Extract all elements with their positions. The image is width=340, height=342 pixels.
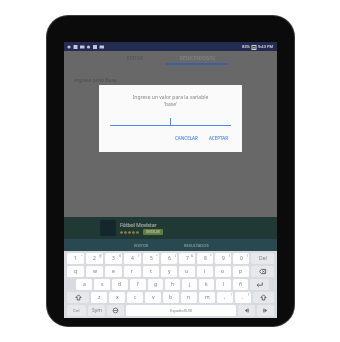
- staticText: Ctrl: [73, 308, 80, 313]
- button[interactable]: .: [235, 292, 251, 303]
- staticText: ingrese paso Base: [74, 77, 117, 84]
- button[interactable]: j: [182, 279, 197, 290]
- button[interactable]: EDITOR: [116, 239, 166, 251]
- button[interactable]: x: [109, 292, 125, 303]
- staticText: 3: [112, 255, 115, 262]
- staticText: CANCELAR: [175, 135, 198, 141]
- button[interactable]: w: [86, 266, 103, 277]
- button[interactable]: Backspace: [251, 266, 274, 277]
- staticText: d: [118, 281, 122, 288]
- button[interactable]: e: [105, 266, 122, 277]
- button[interactable]: v: [145, 292, 161, 303]
- button[interactable]: k: [199, 279, 214, 290]
- staticText: Fútbol Movistar: [120, 222, 157, 229]
- button[interactable]: Ctrl: [67, 305, 86, 316]
- button[interactable]: Move cursor right: [257, 305, 274, 316]
- button[interactable]: RESULTADOS: [166, 239, 226, 251]
- staticText: a: [83, 281, 86, 288]
- staticText: ^: [156, 254, 158, 258]
- staticText: .: [242, 294, 244, 301]
- button[interactable]: n: [181, 292, 197, 303]
- button[interactable]: RESULTADO(S/S): [161, 51, 233, 65]
- button[interactable]: u: [179, 266, 195, 277]
- button[interactable]: z: [91, 292, 107, 303]
- button[interactable]: l: [216, 279, 231, 290]
- button[interactable]: 1: [67, 253, 84, 264]
- button[interactable]: c: [127, 292, 143, 303]
- button[interactable]: 5: [143, 253, 159, 264]
- button[interactable]: Shift: [67, 292, 89, 303]
- button[interactable]: ACEPTAR: [206, 133, 231, 143]
- button[interactable]: Español(US): [126, 305, 236, 316]
- button[interactable]: b: [163, 292, 179, 303]
- staticText: EDITOR: [134, 243, 149, 248]
- staticText: q: [74, 268, 78, 275]
- staticText: t: [150, 268, 152, 275]
- button[interactable]: Shift: [253, 292, 274, 303]
- staticText: @: [99, 254, 102, 258]
- staticText: i: [204, 268, 206, 275]
- button[interactable]: 8: [197, 253, 213, 264]
- staticText: w: [93, 268, 97, 275]
- button[interactable]: Move cursor left: [238, 305, 255, 316]
- button[interactable]: 7: [179, 253, 195, 264]
- staticText: Español(US): [170, 308, 193, 313]
- staticText: 0: [240, 255, 243, 262]
- button[interactable]: Del: [251, 253, 274, 264]
- button[interactable]: t: [143, 266, 159, 277]
- staticText: g: [154, 281, 158, 288]
- button[interactable]: ñ: [233, 279, 248, 290]
- staticText: 2: [93, 255, 96, 262]
- staticText: 4: [131, 255, 134, 262]
- button[interactable]: 0: [233, 253, 249, 264]
- button[interactable]: s: [94, 279, 110, 290]
- staticText: 7: [186, 255, 189, 262]
- staticText: &: [191, 254, 194, 258]
- button[interactable]: ,: [217, 292, 233, 303]
- button[interactable]: i: [197, 266, 213, 277]
- button[interactable]: h: [165, 279, 180, 290]
- staticText: 9: [222, 255, 225, 262]
- button[interactable]: 3: [105, 253, 122, 264]
- staticText: ñ: [239, 281, 243, 288]
- staticText: #: [119, 254, 121, 258]
- staticText: z: [98, 294, 101, 301]
- staticText: v: [152, 294, 155, 301]
- button[interactable]: Fútbol Movistar: [64, 217, 277, 239]
- staticText: !: [231, 293, 232, 297]
- button[interactable]: f: [130, 279, 146, 290]
- staticText: j: [189, 281, 191, 288]
- button[interactable]: a: [76, 279, 92, 290]
- button[interactable]: Sym: [88, 305, 105, 316]
- button[interactable]: q: [67, 266, 84, 277]
- button[interactable]: o: [215, 266, 231, 277]
- staticText: 5: [150, 255, 153, 262]
- staticText: e: [112, 268, 115, 275]
- button[interactable]: y: [161, 266, 177, 277]
- button[interactable]: g: [148, 279, 163, 290]
- staticText: l: [223, 281, 225, 288]
- button[interactable]: m: [199, 292, 215, 303]
- staticText: EDITOR: [127, 55, 144, 61]
- staticText: Del: [259, 255, 267, 262]
- staticText: ?: [248, 293, 250, 297]
- staticText: *: [210, 254, 212, 258]
- staticText: (: [175, 254, 176, 258]
- staticText: r: [131, 268, 134, 275]
- staticText: INSTALAR: [146, 230, 160, 234]
- staticText: h: [171, 281, 175, 288]
- staticText: 6: [168, 255, 171, 262]
- button[interactable]: p: [233, 266, 249, 277]
- button[interactable]: CANCELAR: [172, 133, 201, 143]
- staticText: Sym: [92, 307, 102, 314]
- button[interactable]: 6: [161, 253, 177, 264]
- button[interactable]: 9: [215, 253, 231, 264]
- button[interactable]: Enter: [250, 279, 269, 290]
- button[interactable]: 4: [124, 253, 141, 264]
- button[interactable]: 2: [86, 253, 103, 264]
- staticText: ACEPTAR: [209, 135, 228, 141]
- button[interactable]: r: [124, 266, 141, 277]
- button[interactable]: d: [112, 279, 128, 290]
- button[interactable]: Change language: [107, 305, 124, 316]
